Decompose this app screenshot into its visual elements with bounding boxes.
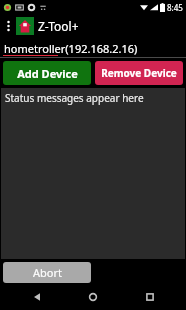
staticText: Remove Device	[101, 66, 177, 80]
button[interactable]: More options	[2, 14, 15, 38]
button[interactable]: Back	[17, 284, 57, 310]
button[interactable]: Home	[73, 284, 113, 310]
button[interactable]: Status messages appear here	[1, 88, 185, 259]
staticText: hometroller(192.168.2.16)	[4, 41, 138, 56]
staticText: Abort	[33, 265, 62, 280]
staticText: Add Device	[17, 66, 78, 81]
staticText: Z-Tool+	[38, 18, 79, 34]
button[interactable]: Recent apps	[130, 284, 170, 310]
button[interactable]: Remove Device	[95, 61, 183, 85]
staticText: 8:45	[167, 2, 183, 13]
button[interactable]: hometroller(192.168.2.16)	[0, 38, 186, 60]
button[interactable]: Abort	[3, 262, 91, 283]
staticText: Status messages appear here	[5, 91, 144, 105]
button[interactable]: Add Device	[3, 61, 91, 85]
